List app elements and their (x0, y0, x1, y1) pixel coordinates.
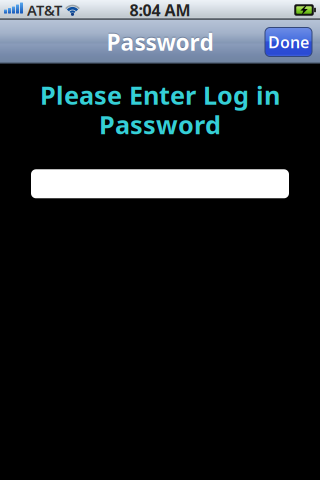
button[interactable]: Password field (31, 169, 289, 198)
staticText: Please Enter Log in (40, 78, 280, 112)
staticText: AT&T (27, 0, 62, 20)
staticText: Password (106, 27, 213, 57)
staticText: Done (268, 31, 309, 53)
staticText: Password (99, 108, 221, 141)
staticText: Password (106, 26, 213, 56)
staticText: 8:04 AM (129, 0, 190, 21)
button[interactable]: Done (265, 27, 312, 56)
